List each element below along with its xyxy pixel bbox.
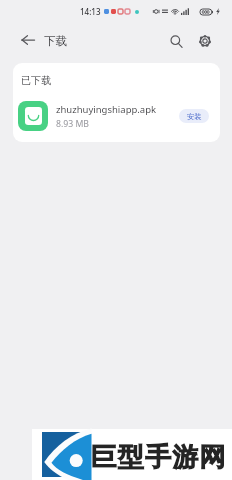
button[interactable]: Search	[162, 27, 190, 55]
button[interactable]: zhuzhuyingshiapp.apk	[13, 96, 220, 136]
button[interactable]: Settings	[191, 27, 219, 55]
staticText: 14:13	[80, 6, 101, 17]
staticText: 安装	[187, 112, 202, 121]
staticText: 8.93 MB	[56, 118, 90, 130]
button[interactable]: Back	[14, 26, 42, 54]
staticText: 巨型手游网	[90, 441, 226, 474]
staticText: 已下载	[21, 74, 51, 87]
button[interactable]: 安装	[179, 109, 209, 123]
staticText: zhuzhuyingshiapp.apk	[56, 103, 157, 116]
staticText: 下载	[44, 34, 67, 48]
